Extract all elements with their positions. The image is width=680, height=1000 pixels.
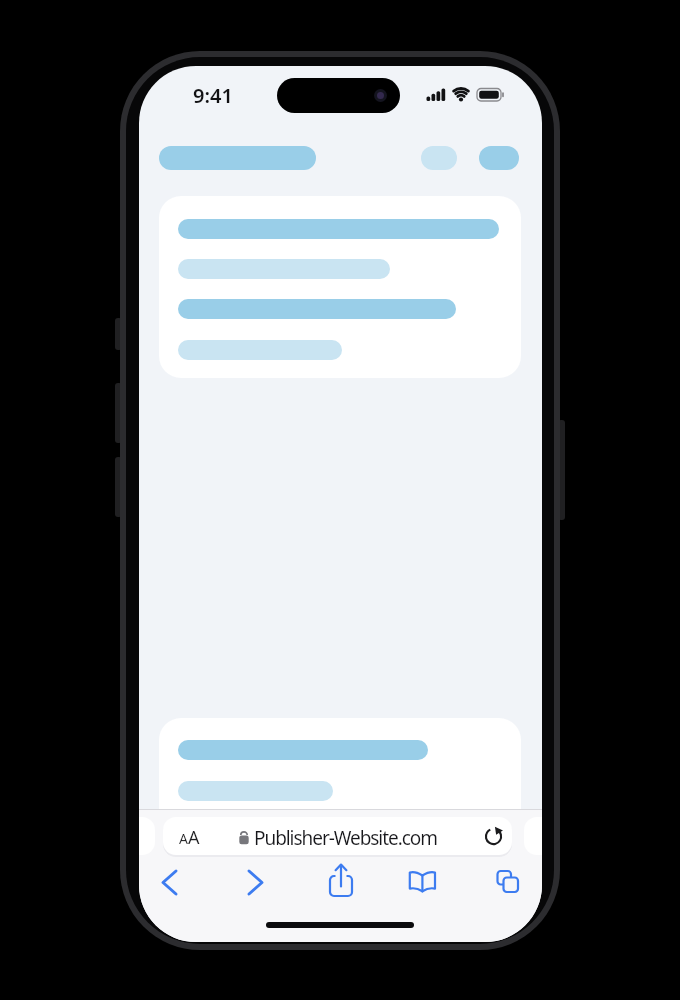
button[interactable] xyxy=(159,146,316,170)
button[interactable] xyxy=(421,146,457,170)
button[interactable] xyxy=(479,146,519,170)
staticText: AA xyxy=(179,825,200,850)
button[interactable] xyxy=(472,817,512,855)
button[interactable]: AA xyxy=(163,817,512,855)
staticText: Publisher-Website.com xyxy=(254,825,437,851)
button[interactable] xyxy=(457,860,501,904)
staticText: 9:41 xyxy=(193,82,233,109)
button[interactable]: AA xyxy=(179,825,200,850)
button[interactable] xyxy=(371,860,415,904)
